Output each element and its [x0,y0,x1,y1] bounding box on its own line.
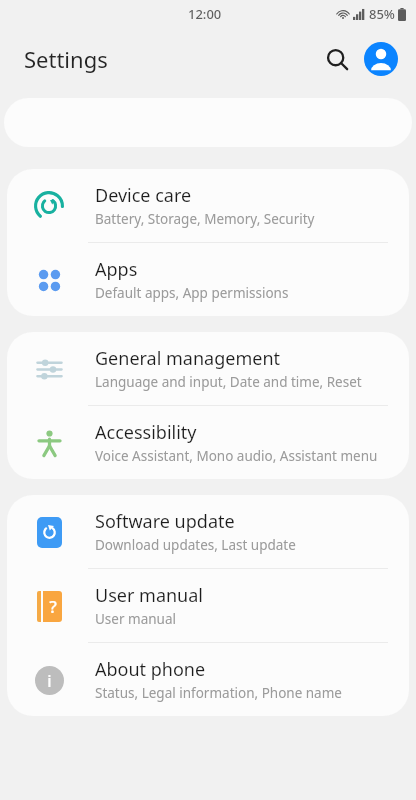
staticText: 85% [369,5,395,23]
button[interactable]: Search [316,38,358,80]
staticText: User manual [95,583,203,608]
staticText: Download updates, Last update [95,536,296,554]
button[interactable]: Apps [7,243,409,316]
staticText: Accessibility [95,420,197,445]
staticText: ? [49,595,57,618]
button[interactable]: Accessibility [7,406,409,479]
staticText: 12:00 [188,5,222,23]
staticText: User manual [95,610,176,628]
staticText: Status, Legal information, Phone name [95,684,342,702]
staticText: Battery, Storage, Memory, Security [95,210,315,228]
staticText: Apps [95,257,138,282]
button[interactable]: Account [364,42,398,76]
staticText: Device care [95,183,192,208]
staticText: Language and input, Date and time, Reset [95,373,362,391]
staticText: i [47,670,52,692]
button[interactable]: Software update [7,495,409,569]
staticText: About phone [95,657,206,682]
staticText: Settings [24,44,108,74]
button[interactable]: Device care [7,169,409,243]
staticText: General management [95,346,281,371]
staticText: Voice Assistant, Mono audio, Assistant m… [95,447,378,465]
staticText: Default apps, App permissions [95,284,289,302]
button[interactable]: General management [7,332,409,406]
button[interactable]: i [7,643,409,716]
button[interactable]: ? [7,569,409,643]
staticText: Software update [95,509,235,534]
